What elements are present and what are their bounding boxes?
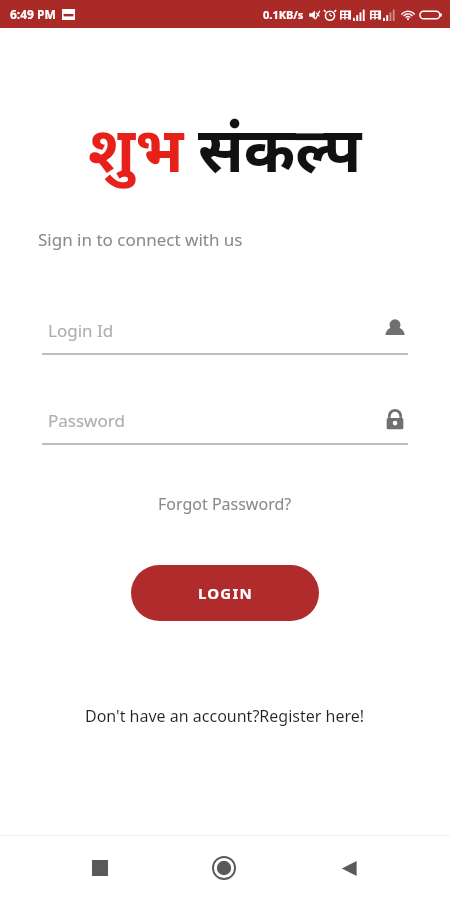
staticText: 6:49 PM [10, 6, 56, 22]
button[interactable]: Back [325, 844, 373, 892]
other: Login Id [382, 317, 408, 343]
button[interactable]: Password [42, 403, 408, 445]
button[interactable]: Home [200, 844, 248, 892]
staticText: Forgot Password? [158, 493, 292, 515]
staticText: Sign in to connect with us [38, 228, 243, 251]
button[interactable]: LOGIN [131, 565, 319, 621]
other: Password [382, 407, 408, 433]
staticText: Don't have an account?Register here! [85, 705, 365, 727]
button[interactable]: Recents [76, 844, 124, 892]
staticText: 0.1KB/s [263, 7, 304, 22]
button[interactable]: Forgot Password? [148, 487, 302, 521]
button[interactable]: Don't have an account?Register here! [75, 699, 375, 733]
staticText: शुभ [88, 106, 184, 190]
staticText: संकल्प [198, 106, 362, 190]
staticText: Login Id [48, 319, 114, 342]
staticText: Password [48, 409, 125, 432]
button[interactable]: Login Id [42, 313, 408, 355]
staticText: LOGIN [198, 583, 253, 603]
